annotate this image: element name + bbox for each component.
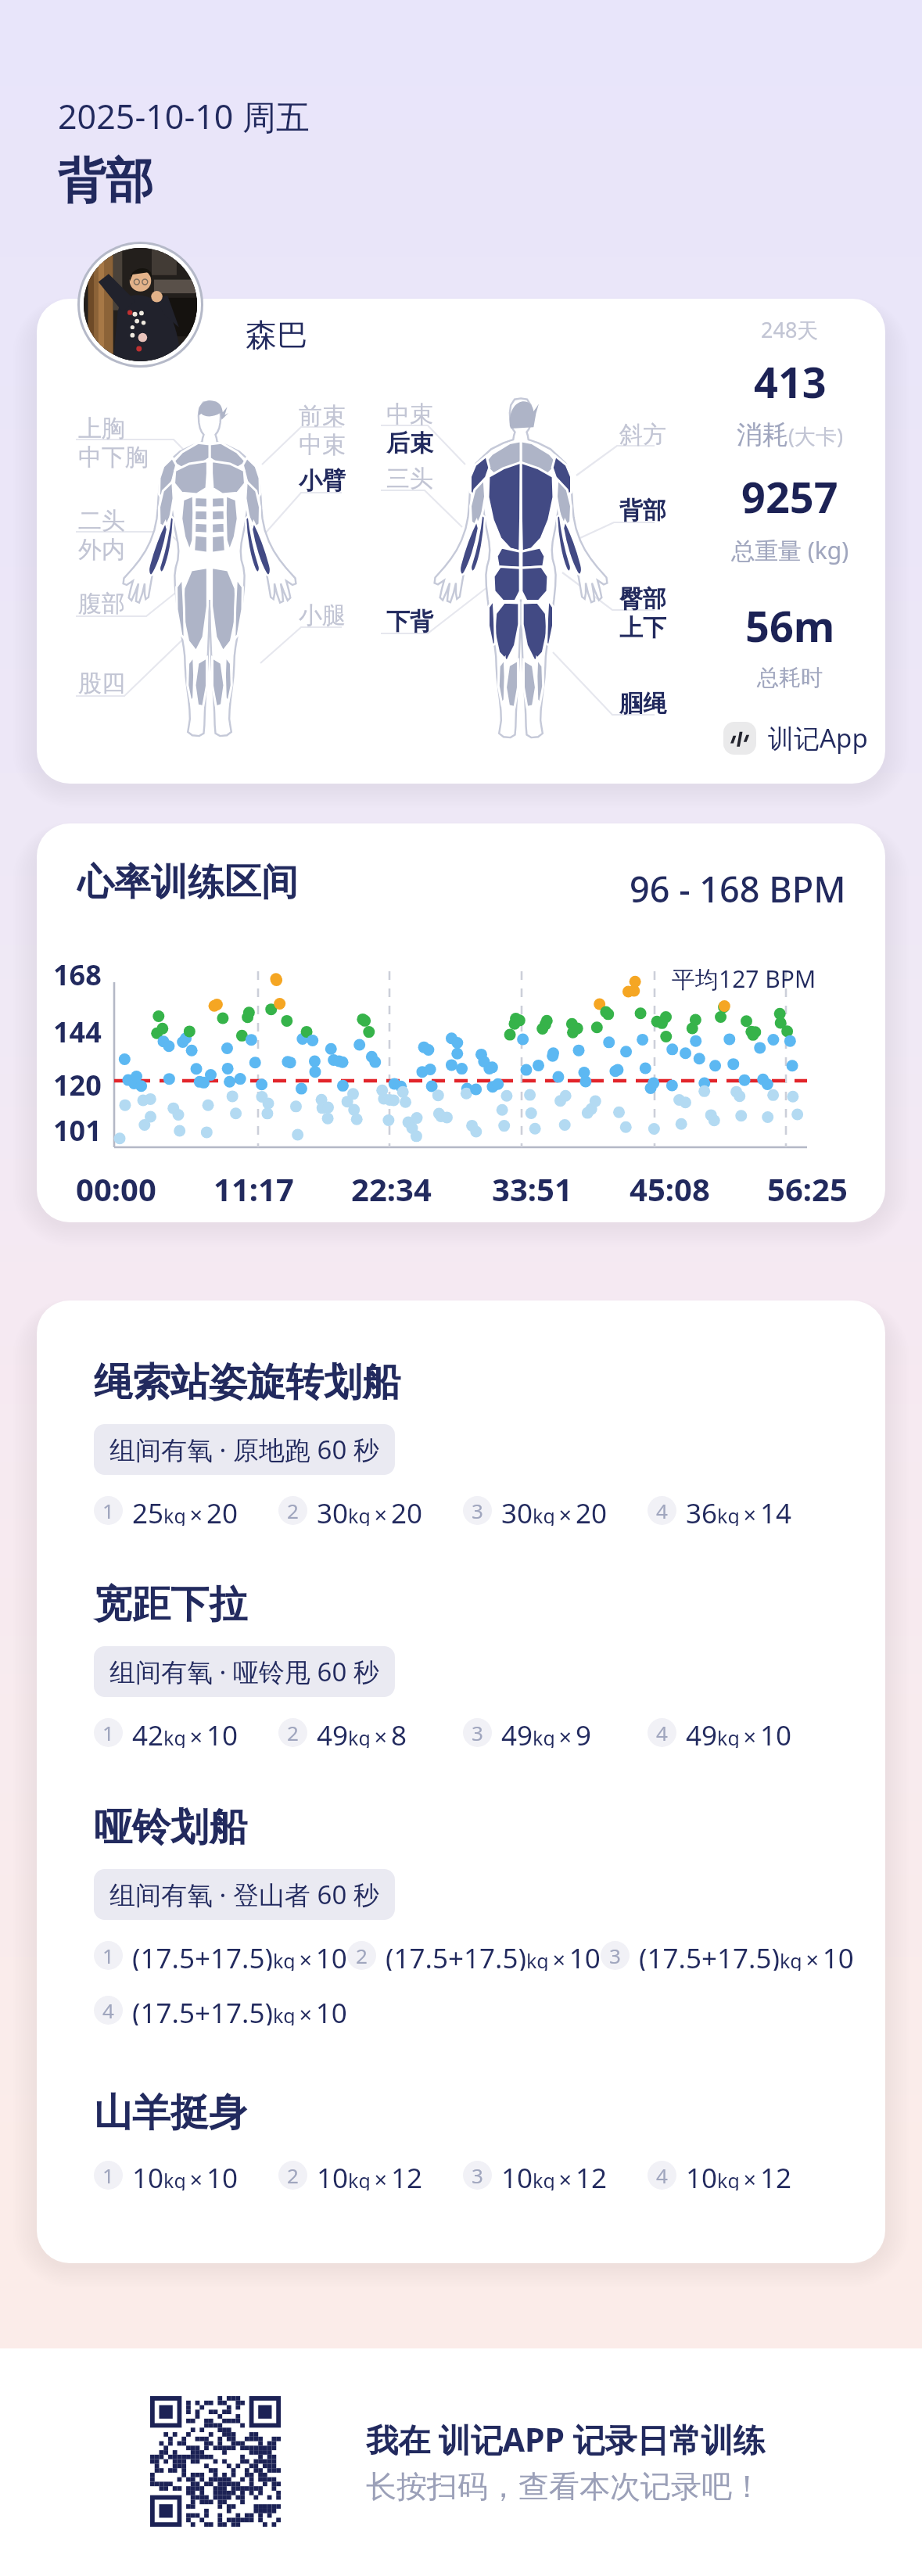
button[interactable]: 1 [94,1717,239,1748]
staticText: 我在 训记APP 记录日常训练 [366,2417,766,2461]
button[interactable]: 3 [601,1939,854,1971]
staticText: 二头 [78,506,125,536]
button[interactable]: 2 [347,1939,601,1971]
staticText: (17.5+17.5)kg × 10 [386,1939,601,1971]
staticText: 3 [472,1719,483,1746]
staticText: 36kg × 14 [686,1494,792,1526]
staticText: 168 [53,956,102,994]
staticText: 2 [287,1719,299,1746]
staticText: 2025-10-10 周五 [58,93,310,139]
staticText: (17.5+17.5)kg × 10 [132,1939,347,1971]
staticText: 4 [656,1497,668,1524]
staticText: 腹部 [78,589,125,619]
button[interactable]: 1 [94,1494,239,1526]
staticText: 长按扫码，查看本次记录吧！ [366,2467,762,2506]
staticText: 3 [609,1942,621,1969]
button[interactable]: 2 [278,1494,423,1526]
button[interactable]: 训记App [723,720,868,755]
button[interactable]: 4 [94,1994,347,2025]
staticText: 绳索站姿旋转划船 [94,1358,400,1407]
staticText: 56m [745,597,835,655]
staticText: 组间有氧 · 哑铃甩 60 秒 [109,1654,379,1689]
staticText: 3 [472,1497,483,1524]
staticText: 30kg × 20 [317,1494,423,1526]
button[interactable]: 2 [278,1717,407,1748]
staticText: 10kg × 12 [686,2159,792,2190]
staticText: 49kg × 8 [317,1717,407,1748]
staticText: 22:34 [351,1168,432,1210]
staticText: 49kg × 9 [501,1717,592,1748]
staticText: 4 [656,1719,668,1746]
staticText: 训记App [768,720,868,755]
staticText: 总耗时 [757,664,823,691]
staticText: 小臂 [299,466,346,496]
staticText: 42kg × 10 [132,1717,239,1748]
button[interactable]: 用户头像 [84,248,197,361]
staticText: (大卡) [788,422,844,450]
staticText: 后束 [386,429,433,458]
button[interactable]: 1 [94,2159,239,2190]
staticText: 1 [102,2162,114,2189]
staticText: 2 [356,1942,368,1969]
staticText: 下背 [386,607,433,637]
staticText: 股四 [78,669,125,698]
staticText: (17.5+17.5)kg × 10 [132,1994,347,2025]
staticText: 背部 [58,151,153,211]
staticText: 30kg × 20 [501,1494,608,1526]
staticText: 3 [472,2162,483,2189]
staticText: 上胸 [78,414,125,443]
staticText: 33:51 [492,1168,572,1210]
staticText: 120 [53,1066,102,1104]
staticText: 中束 [299,430,346,460]
staticText: 平均127 BPM [672,963,816,995]
staticText: 413 [754,353,827,411]
staticText: 心率训练区间 [77,859,298,906]
staticText: 斜方 [619,420,666,450]
staticText: 96 - 168 BPM [630,865,846,913]
staticText: 中下胸 [78,443,149,472]
staticText: 消耗 [737,418,788,451]
staticText: 10kg × 12 [501,2159,608,2190]
button[interactable]: 4 [648,1494,792,1526]
staticText: 2 [287,1497,299,1524]
staticText: 144 [53,1013,102,1051]
staticText: 1 [102,1719,114,1746]
button[interactable]: 3 [463,1494,608,1526]
staticText: 臀部 [619,584,666,614]
staticText: 1 [102,1497,114,1524]
staticText: 4 [102,1997,114,2024]
staticText: 中束 [386,400,433,429]
staticText: 三头 [386,464,433,493]
staticText: 小腿 [299,601,346,630]
staticText: 外内 [78,535,125,565]
staticText: 背部 [619,496,666,526]
button[interactable]: 2 [278,2159,423,2190]
staticText: 宽距下拉 [94,1580,247,1629]
staticText: 腘绳 [619,689,666,719]
staticText: 101 [53,1111,102,1150]
staticText: 9257 [741,468,838,526]
staticText: 哑铃划船 [94,1803,247,1852]
staticText: 00:00 [76,1168,156,1210]
staticText: 上下 [619,613,666,643]
staticText: 组间有氧 · 原地跑 60 秒 [109,1432,379,1467]
button[interactable]: 3 [463,2159,608,2190]
staticText: (17.5+17.5)kg × 10 [639,1939,854,1971]
staticText: 49kg × 10 [686,1717,792,1748]
button[interactable]: 3 [463,1717,592,1748]
button[interactable]: 4 [648,2159,792,2190]
staticText: 组间有氧 · 登山者 60 秒 [109,1877,379,1912]
staticText: 45:08 [630,1168,710,1210]
staticText: 总重量 (kg) [731,534,849,566]
button[interactable]: 1 [94,1939,347,1971]
staticText: 前束 [299,401,346,431]
staticText: 森巴 [246,315,308,354]
staticText: 2 [287,2162,299,2189]
staticText: 56:25 [767,1168,848,1210]
staticText: 10kg × 10 [132,2159,239,2190]
staticText: 山羊挺身 [94,2089,247,2137]
staticText: 11:17 [213,1168,294,1210]
button[interactable]: 4 [648,1717,792,1748]
staticText: 248天 [761,315,819,344]
staticText: 25kg × 20 [132,1494,239,1526]
